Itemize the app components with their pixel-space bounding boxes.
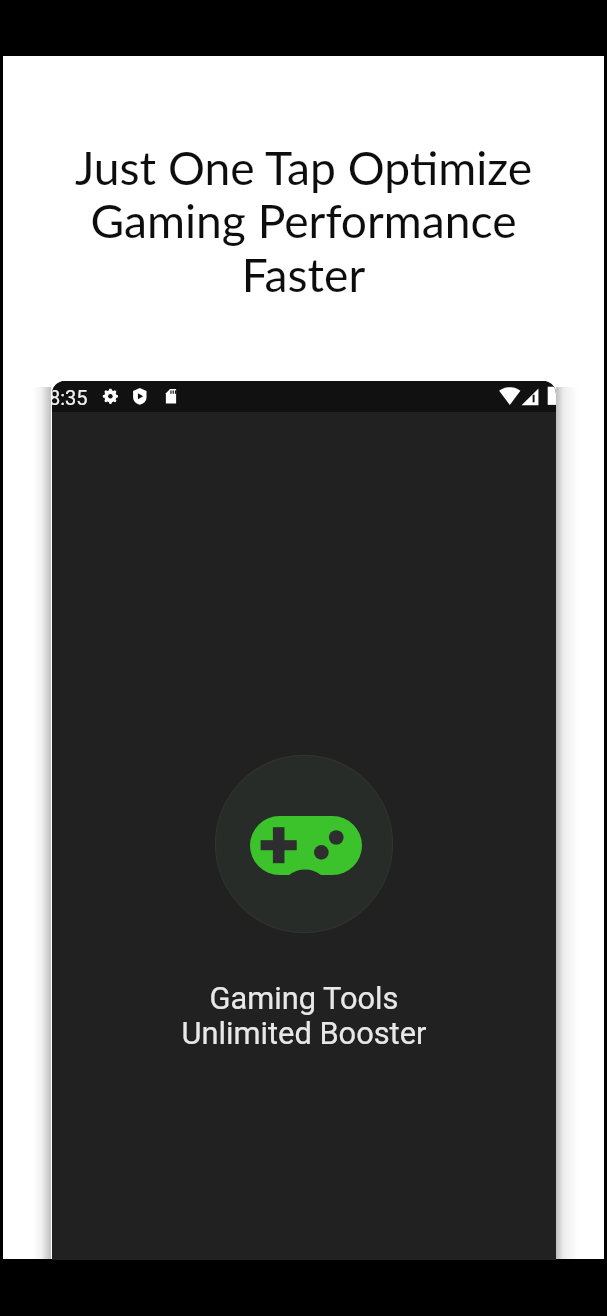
staticText: 8:35 — [52, 386, 88, 409]
other: Gaming Tools app icon — [214, 754, 394, 934]
staticText: Just One Tap Optimize Gaming Performance… — [3, 139, 604, 302]
staticText: Gaming Tools Unlimited Booster — [52, 980, 556, 1051]
